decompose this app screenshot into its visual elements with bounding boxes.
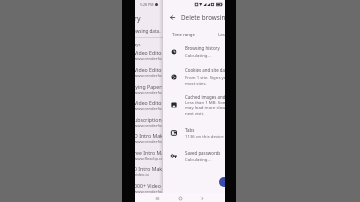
staticText: Video Editor [135,99,162,106]
staticText: Time range [172,31,195,37]
button[interactable]: Home [174,193,186,202]
staticText: may load more slowly on your [185,104,225,110]
staticText: Video Editor [135,66,162,73]
staticText: Calculating... [185,156,211,162]
staticText: www.renderforest [135,56,162,62]
staticText: next visit. [185,110,205,116]
staticText: 0 Intro Maker [135,165,162,172]
button[interactable]: Video Editor [135,99,163,114]
button[interactable]: Video Editor [135,49,163,64]
button[interactable]: lying Papers L [135,83,163,98]
staticText: www.renderforest [135,90,162,96]
staticText: From 1 site. Signs you out of [185,74,225,80]
staticText: D Intro Maker [135,132,162,139]
button[interactable]: D Intro Maker [135,132,163,147]
staticText: most sites. [185,80,207,86]
button[interactable]: Tabs [163,124,225,140]
staticText: Delete browsing data [181,13,225,22]
button[interactable]: Cached images and files [163,91,225,116]
button[interactable]: Cookies and site data [163,64,225,87]
staticText: Cookies and site data [185,67,225,73]
staticText: Tabs [185,127,195,133]
staticText: Cached images and files [185,94,225,100]
staticText: Video Editor [135,49,162,56]
staticText: Last 4 weeks [218,31,225,37]
staticText: ays [135,42,141,48]
staticText: ry [135,14,141,24]
staticText: video.io [135,172,150,178]
staticText: Browsing history [185,45,220,51]
staticText: 1136 on this device [185,133,224,139]
staticText: 000+ Video Te [135,182,162,189]
button[interactable]: Time range [163,27,225,39]
button[interactable]: Back [196,193,208,202]
staticText: Saved passwords [185,150,221,156]
button[interactable]: ubscription Pl [135,116,163,131]
staticText: ubscription Pl [135,116,162,123]
button[interactable]: 0 Intro Maker [135,165,163,180]
staticText: www.renderforest [135,73,162,79]
staticText: 5:28 PM [140,2,154,7]
button[interactable]: Recents [151,193,163,202]
staticText: www.flexclip.com [135,156,162,162]
staticText: www.renderforest [135,189,162,195]
staticText: www.renderforest [135,139,162,145]
button[interactable]: Delete data [219,177,225,187]
button[interactable]: Back [167,12,177,22]
button[interactable]: Video Editor [135,66,163,81]
staticText: www.renderforest [135,106,162,112]
button[interactable]: 000+ Video Te [135,182,163,197]
button[interactable]: ree Intro Make [135,149,163,164]
staticText: lying Papers L [135,83,162,90]
staticText: Less than 1 MB. Some sites [185,99,225,105]
button[interactable]: Browsing history [163,42,225,59]
button[interactable]: Saved passwords [163,147,225,163]
staticText: ree Intro Make [135,149,162,156]
staticText: Calculating... [185,52,211,58]
staticText: owsing data... [135,28,161,34]
staticText: www.renderforest [135,123,162,129]
